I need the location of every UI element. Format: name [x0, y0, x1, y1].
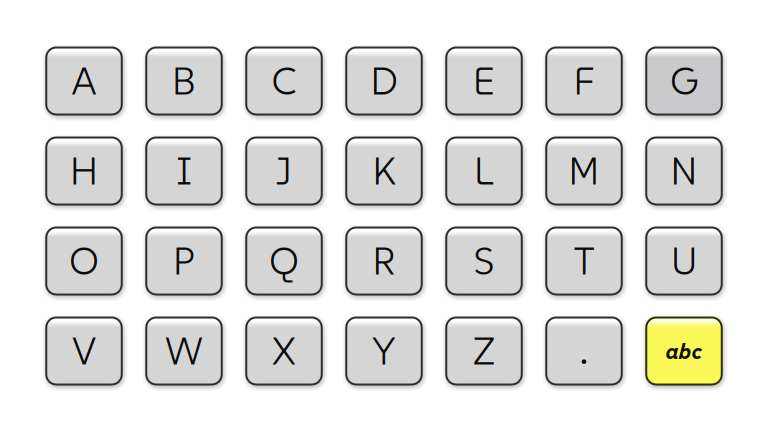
button[interactable]: C: [246, 47, 322, 114]
button[interactable]: P: [146, 227, 222, 294]
button[interactable]: I: [146, 137, 222, 204]
button[interactable]: T: [546, 227, 622, 294]
button[interactable]: G: [646, 47, 722, 114]
button[interactable]: A: [46, 47, 122, 114]
staticText: B: [172, 57, 196, 105]
staticText: S: [473, 237, 494, 285]
staticText: H: [70, 147, 98, 195]
button[interactable]: U: [646, 227, 722, 294]
button[interactable]: Q: [246, 227, 322, 294]
staticText: T: [574, 237, 594, 285]
staticText: abc: [665, 337, 702, 365]
staticText: C: [271, 57, 296, 105]
button[interactable]: R: [346, 227, 422, 294]
button[interactable]: B: [146, 47, 222, 114]
staticText: K: [372, 147, 395, 195]
button[interactable]: L: [446, 137, 522, 204]
button[interactable]: J: [246, 137, 322, 204]
button[interactable]: abc: [646, 317, 722, 384]
staticText: F: [573, 57, 594, 105]
button[interactable]: D: [346, 47, 422, 114]
staticText: J: [276, 147, 292, 195]
button[interactable]: N: [646, 137, 722, 204]
staticText: E: [473, 57, 495, 105]
button[interactable]: V: [46, 317, 122, 384]
button[interactable]: F: [546, 47, 622, 114]
button[interactable]: [546, 317, 622, 384]
staticText: M: [568, 147, 599, 195]
staticText: R: [372, 237, 395, 285]
staticText: G: [670, 57, 698, 105]
staticText: N: [670, 147, 697, 195]
staticText: Z: [473, 327, 495, 375]
button[interactable]: Y: [346, 317, 422, 384]
staticText: L: [474, 147, 494, 195]
staticText: A: [71, 57, 96, 105]
button[interactable]: K: [346, 137, 422, 204]
staticText: I: [176, 147, 191, 195]
staticText: U: [671, 237, 697, 285]
staticText: O: [69, 237, 99, 285]
staticText: Y: [372, 327, 396, 375]
staticText: P: [173, 237, 195, 285]
button[interactable]: O: [46, 227, 122, 294]
button[interactable]: X: [246, 317, 322, 384]
button[interactable]: M: [546, 137, 622, 204]
button[interactable]: S: [446, 227, 522, 294]
staticText: X: [272, 327, 296, 375]
button[interactable]: W: [146, 317, 222, 384]
button[interactable]: Z: [446, 317, 522, 384]
staticText: W: [165, 327, 203, 375]
button[interactable]: H: [46, 137, 122, 204]
staticText: V: [72, 327, 96, 375]
button[interactable]: E: [446, 47, 522, 114]
staticText: D: [370, 57, 397, 105]
staticText: Q: [269, 237, 299, 285]
